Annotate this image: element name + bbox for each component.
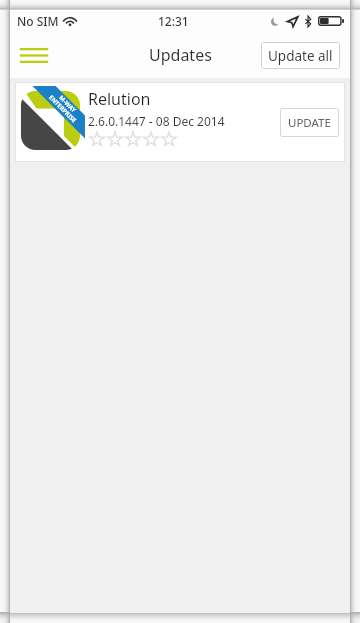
staticText: 2.6.0.1447 - 08 Dec 2014 bbox=[88, 113, 225, 129]
button[interactable]: Update all bbox=[261, 42, 340, 69]
staticText: 12:31 bbox=[158, 13, 189, 29]
staticText: No SIM bbox=[17, 13, 59, 29]
button[interactable]: UPDATE bbox=[280, 108, 339, 137]
button[interactable]: Menu bbox=[12, 32, 56, 78]
staticText: Relution bbox=[88, 88, 151, 110]
staticText: UPDATE bbox=[288, 115, 331, 131]
button[interactable]: M-WAY ENTERPRISE bbox=[15, 82, 345, 162]
staticText: M-WAY ENTERPRISE bbox=[47, 88, 83, 125]
staticText: Updates bbox=[149, 44, 212, 66]
staticText: Update all bbox=[268, 47, 333, 65]
